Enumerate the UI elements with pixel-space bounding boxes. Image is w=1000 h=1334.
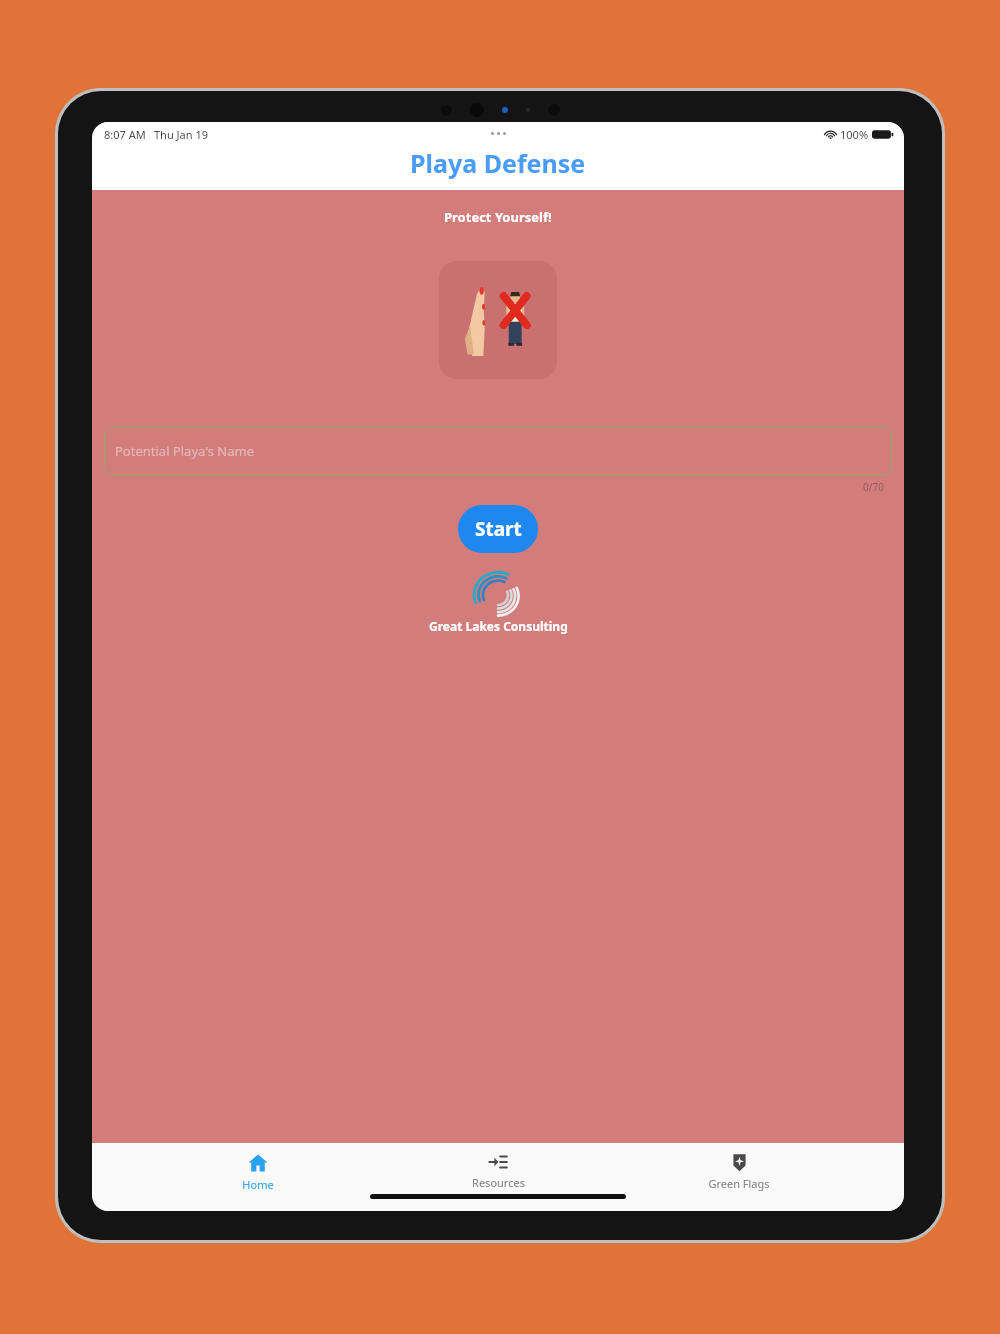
button[interactable]: Home [183, 1149, 333, 1196]
staticText: Potential Playa's Name [115, 442, 254, 460]
button[interactable]: Resources [423, 1149, 573, 1194]
other: Resources [489, 1153, 507, 1171]
other: Green Flags [730, 1153, 749, 1172]
staticText: Great Lakes Consulting [429, 618, 568, 634]
other: Great Lakes Consulting logo [472, 575, 524, 615]
staticText: 8:07 AM [104, 127, 146, 142]
staticText: Protect Yourself! [444, 208, 552, 226]
button[interactable]: Start [458, 505, 538, 553]
staticText: Resources [472, 1175, 525, 1190]
staticText: Home [242, 1177, 274, 1192]
button[interactable]: Green Flags [664, 1149, 814, 1195]
staticText: Playa Defense [410, 146, 586, 180]
staticText: 100% [840, 127, 869, 142]
other: Home [248, 1153, 268, 1173]
button[interactable] [439, 261, 557, 379]
staticText: 0/70 [863, 480, 884, 494]
staticText: Green Flags [708, 1176, 770, 1191]
staticText: Start [475, 516, 522, 542]
staticText: Thu Jan 19 [154, 127, 208, 142]
button[interactable]: Potential Playa's Name [104, 427, 892, 475]
